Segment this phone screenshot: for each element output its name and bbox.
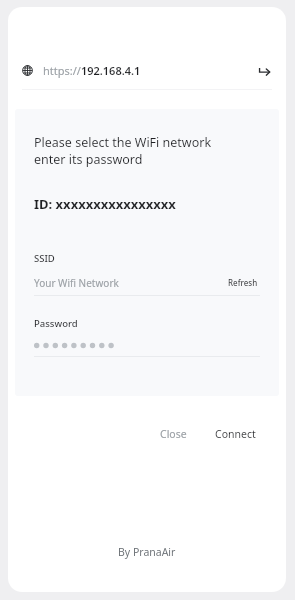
- staticText: enter its password: [34, 151, 143, 168]
- staticText: By PranaAir: [118, 545, 176, 559]
- staticText: Close: [160, 427, 187, 441]
- button[interactable]: Refresh: [226, 275, 260, 290]
- staticText: ID: xxxxxxxxxxxxxxxx: [34, 195, 176, 213]
- staticText: Your Wifi Network: [34, 276, 119, 290]
- button[interactable]: [34, 341, 260, 350]
- staticText: SSID: [34, 252, 55, 265]
- button[interactable]: Connect: [209, 422, 262, 446]
- button[interactable]: Go: [253, 60, 275, 80]
- staticText: Please select the WiFi network: [34, 134, 212, 151]
- staticText: Refresh: [228, 277, 258, 288]
- staticText: Connect: [215, 427, 256, 441]
- button[interactable]: Close: [154, 422, 193, 446]
- staticText: Password: [34, 317, 78, 330]
- staticText: https://192.168.4.1: [43, 63, 141, 78]
